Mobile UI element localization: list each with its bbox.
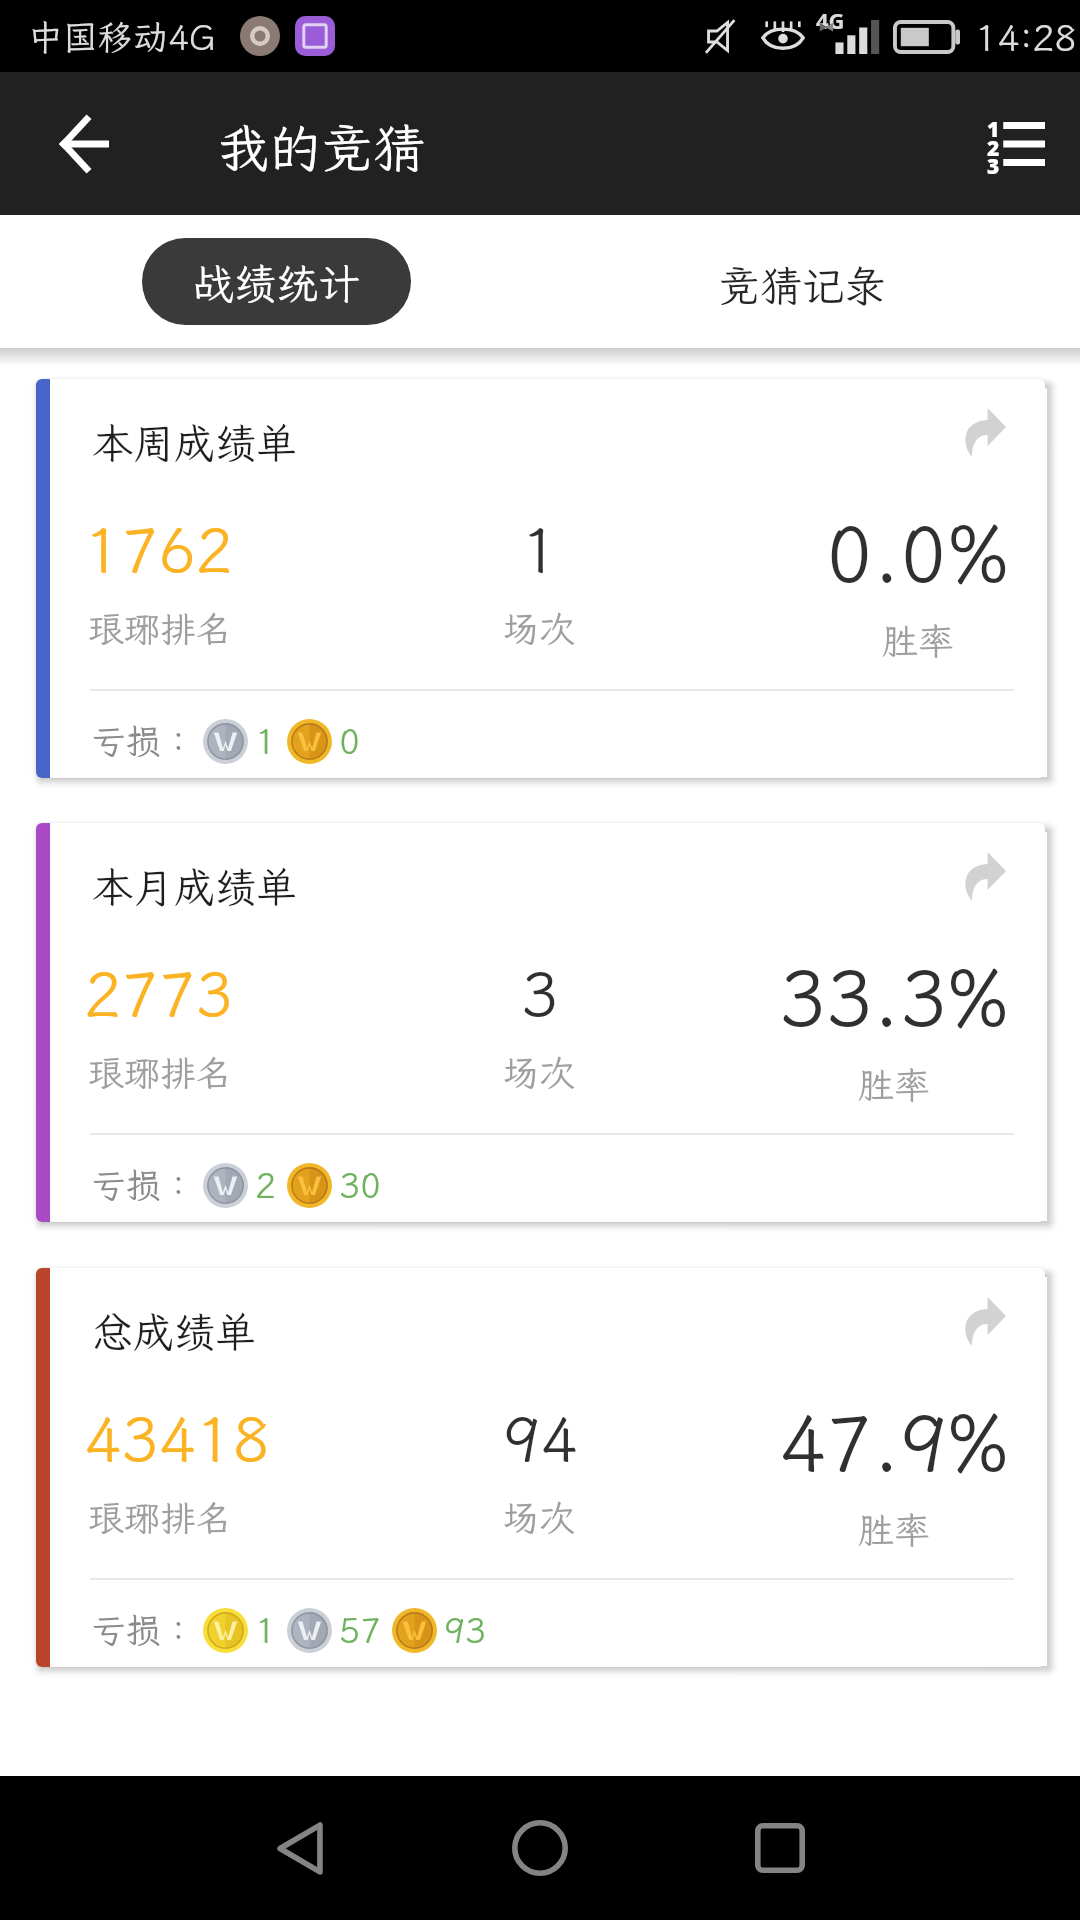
staticText: 33.3% bbox=[779, 946, 1010, 1049]
staticText: 43418 bbox=[84, 1397, 271, 1479]
staticText: 亏损： bbox=[91, 718, 197, 764]
staticText: 胜率 bbox=[858, 1506, 931, 1553]
staticText: 3 bbox=[987, 152, 1000, 181]
staticText: 57 bbox=[339, 1607, 382, 1653]
staticText: 场次 bbox=[503, 605, 576, 652]
staticText: 本周成绩单 bbox=[92, 416, 297, 470]
staticText: 1 bbox=[521, 508, 559, 590]
staticText: 3 bbox=[521, 952, 559, 1034]
button[interactable]: Home bbox=[450, 1776, 630, 1920]
staticText: 琅琊排名 bbox=[88, 1049, 233, 1096]
staticText: 1762 bbox=[84, 508, 233, 590]
button[interactable]: Recent apps bbox=[690, 1776, 870, 1920]
button[interactable]: Share bbox=[940, 389, 1026, 475]
staticText: 胜率 bbox=[882, 617, 955, 664]
staticText: 2 bbox=[987, 134, 1000, 163]
staticText: 我的竞猜 bbox=[217, 113, 426, 181]
staticText: 1 bbox=[987, 115, 1000, 144]
button[interactable]: Share bbox=[940, 1278, 1026, 1364]
button[interactable]: 战绩统计 bbox=[142, 238, 411, 325]
staticText: 0.0% bbox=[826, 502, 1010, 605]
staticText: 总成绩单 bbox=[92, 1305, 256, 1359]
staticText: 琅琊排名 bbox=[88, 605, 233, 652]
staticText: 亏损： bbox=[91, 1607, 197, 1653]
staticText: 中国移动4G bbox=[28, 14, 216, 60]
staticText: 战绩统计 bbox=[192, 256, 361, 311]
staticText: 胜率 bbox=[858, 1061, 931, 1108]
staticText: 30 bbox=[339, 1162, 382, 1208]
staticText: 亏损： bbox=[91, 1162, 197, 1208]
button[interactable]: Share bbox=[940, 833, 1026, 919]
button[interactable]: 总成绩单 bbox=[36, 1268, 1045, 1667]
staticText: 47.9% bbox=[779, 1391, 1010, 1494]
staticText: 2773 bbox=[84, 952, 233, 1034]
staticText: 2 bbox=[255, 1162, 277, 1208]
staticText: 琅琊排名 bbox=[88, 1494, 233, 1541]
staticText: 94 bbox=[503, 1397, 578, 1479]
staticText: 本月成绩单 bbox=[92, 860, 297, 914]
button[interactable]: Back bbox=[210, 1776, 390, 1920]
button[interactable]: 本周成绩单 bbox=[36, 379, 1045, 778]
staticText: 1 bbox=[255, 718, 277, 764]
button[interactable]: Ranking list bbox=[968, 96, 1064, 192]
staticText: 场次 bbox=[503, 1049, 576, 1096]
staticText: 14:28 bbox=[975, 13, 1077, 62]
staticText: 场次 bbox=[503, 1494, 576, 1541]
staticText: 竞猜记录 bbox=[718, 258, 887, 313]
button[interactable]: Back bbox=[36, 96, 132, 192]
staticText: 4G bbox=[816, 5, 845, 35]
button[interactable]: 本月成绩单 bbox=[36, 823, 1045, 1222]
staticText: 1 bbox=[255, 1607, 277, 1653]
staticText: 0 bbox=[339, 718, 361, 764]
staticText: 93 bbox=[444, 1607, 487, 1653]
button[interactable]: 竞猜记录 bbox=[667, 215, 937, 348]
